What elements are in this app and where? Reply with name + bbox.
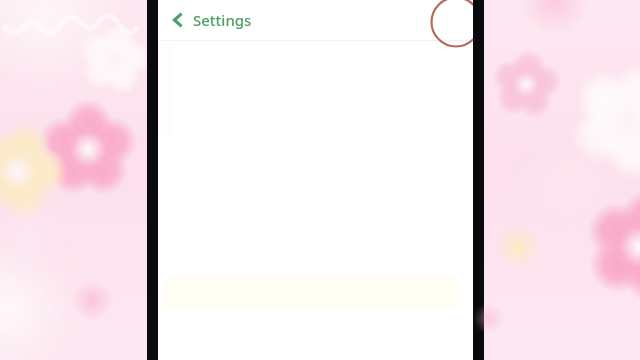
other: Back [172,12,184,28]
button[interactable]: Back [172,2,252,38]
staticText: Settings [193,10,252,30]
other: Tap indicator [430,0,482,48]
